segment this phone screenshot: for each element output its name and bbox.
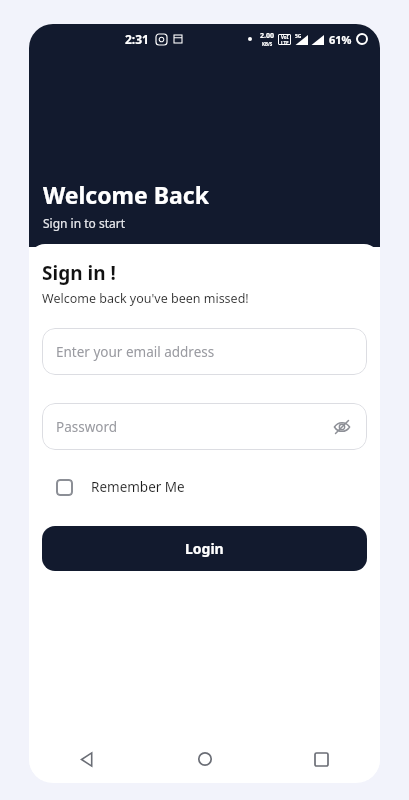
staticText: Sign in ! xyxy=(42,260,116,286)
staticText: Enter your email address xyxy=(56,343,215,361)
staticText: LTE xyxy=(281,40,289,45)
button[interactable]: Login xyxy=(42,526,367,571)
staticText: Login xyxy=(185,539,224,558)
staticText: Password xyxy=(56,418,118,436)
button[interactable]: Show password xyxy=(329,414,355,440)
button[interactable]: Remember Me xyxy=(42,474,187,500)
staticText: Welcome Back xyxy=(43,179,209,210)
button[interactable]: Recent apps xyxy=(263,738,380,780)
staticText: VoI xyxy=(281,34,289,40)
staticText: 2.00 xyxy=(260,31,274,41)
staticText: 2:31 xyxy=(125,31,149,47)
button[interactable]: Home xyxy=(146,738,263,780)
staticText: Sign in to start xyxy=(43,215,126,231)
button[interactable]: Enter your email address xyxy=(42,328,367,375)
button[interactable]: Password xyxy=(42,403,367,450)
staticText: Remember Me xyxy=(91,478,185,496)
button[interactable]: Back xyxy=(29,738,146,780)
staticText: 61% xyxy=(329,32,352,47)
staticText: Welcome back you've been missed! xyxy=(42,290,249,307)
staticText: 5G xyxy=(295,33,302,40)
staticText: KB/S xyxy=(262,41,273,47)
